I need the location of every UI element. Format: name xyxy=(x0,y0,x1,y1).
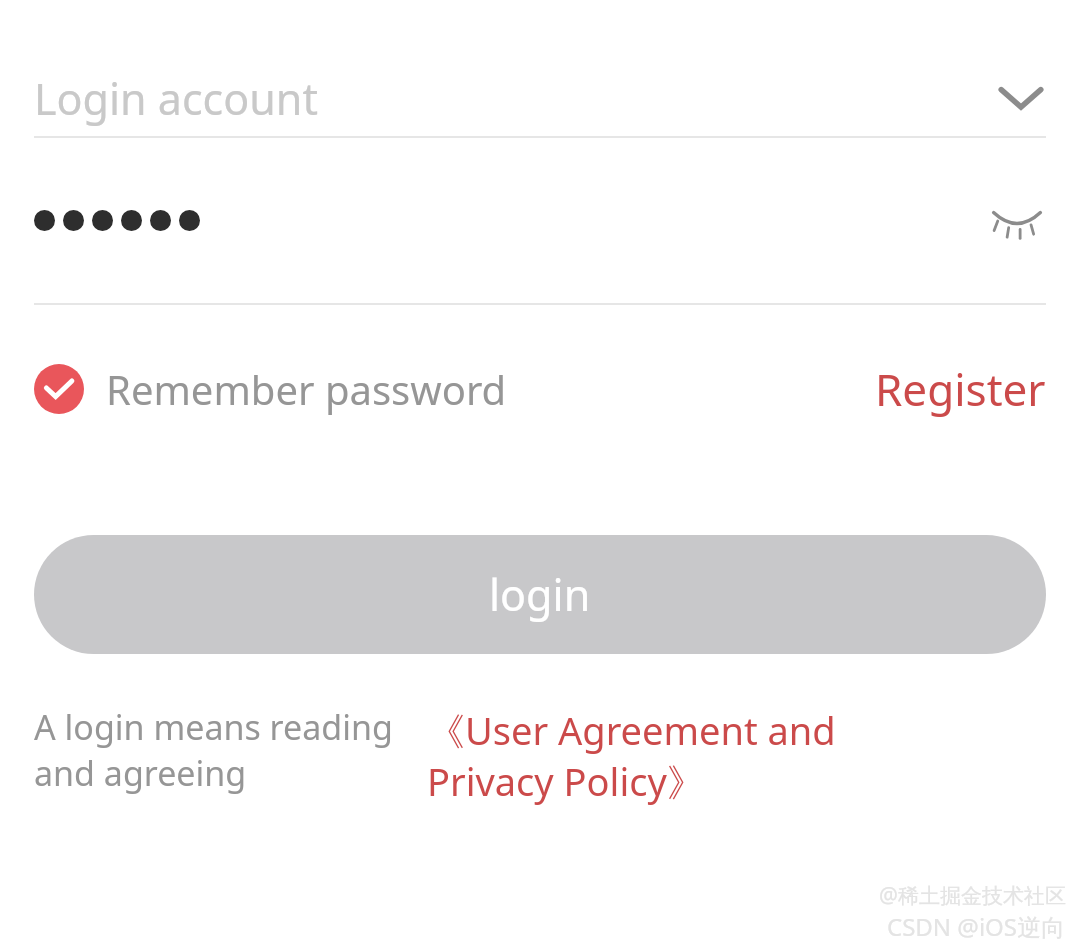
button[interactable]: 《User Agreement and Privacy Policy》 xyxy=(427,704,836,808)
staticText: CSDN @iOS逆向 xyxy=(887,910,1066,943)
button[interactable]: Register xyxy=(875,359,1046,419)
staticText: A login means reading and agreeing xyxy=(34,704,393,796)
staticText: Login account xyxy=(34,69,318,128)
button[interactable]: login xyxy=(34,535,1046,654)
button[interactable]: Show password xyxy=(988,192,1046,250)
button[interactable]: Remember password xyxy=(34,362,507,416)
staticText: 《User Agreement and Privacy Policy》 xyxy=(427,704,836,808)
button[interactable]: Show saved accounts xyxy=(996,73,1046,123)
staticText: login xyxy=(489,565,591,624)
button[interactable]: Show password xyxy=(34,138,1046,303)
staticText: @稀土掘金技术社区 xyxy=(879,881,1066,910)
staticText: Remember password xyxy=(106,362,507,416)
button[interactable]: Login account xyxy=(34,60,1046,136)
staticText: Register xyxy=(875,359,1046,419)
